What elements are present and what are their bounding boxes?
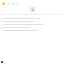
button[interactable] bbox=[0, 18, 64, 20]
button[interactable] bbox=[0, 27, 64, 29]
button[interactable]: Featured item bbox=[30, 7, 35, 12]
button[interactable] bbox=[0, 24, 64, 26]
button[interactable] bbox=[0, 21, 64, 23]
button[interactable]: Profile bbox=[2, 2, 5, 5]
button[interactable]: Navigation bbox=[1, 61, 3, 63]
button[interactable] bbox=[0, 30, 64, 32]
